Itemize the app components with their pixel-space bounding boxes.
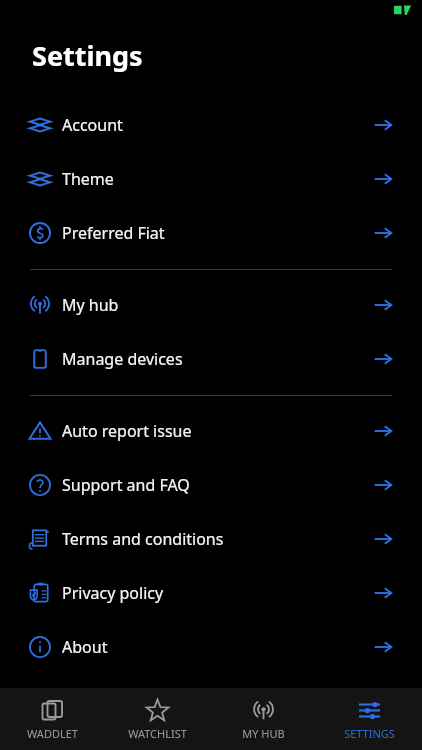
staticText: MY HUB [242, 726, 285, 741]
staticText: Privacy policy [62, 582, 164, 604]
button[interactable]: Support and FAQ [0, 458, 422, 512]
staticText: WATCHLIST [128, 726, 187, 741]
staticText: Preferred Fiat [62, 222, 165, 244]
button[interactable]: Auto report issue [0, 404, 422, 458]
staticText: Auto report issue [62, 420, 192, 442]
staticText: Manage devices [62, 348, 183, 370]
staticText: Support and FAQ [62, 474, 190, 496]
button[interactable]: Preferred Fiat [0, 206, 422, 260]
staticText: WADDLET [27, 726, 78, 741]
staticText: About [62, 636, 108, 658]
staticText: Theme [62, 168, 114, 190]
button[interactable]: Manage devices [0, 332, 422, 386]
staticText: My hub [62, 294, 119, 316]
staticText: SETTINGS [344, 726, 395, 741]
button[interactable]: MY HUB [210, 692, 316, 747]
button[interactable]: Account [0, 98, 422, 152]
button[interactable]: Terms and conditions [0, 512, 422, 566]
button[interactable]: My hub [0, 278, 422, 332]
button[interactable]: Theme [0, 152, 422, 206]
staticText: Settings [32, 37, 143, 74]
button[interactable]: WADDLET [0, 692, 105, 747]
staticText: Account [62, 114, 123, 136]
button[interactable]: Privacy policy [0, 566, 422, 620]
staticText: Terms and conditions [62, 528, 224, 550]
button[interactable]: SETTINGS [316, 692, 422, 747]
button[interactable]: WATCHLIST [105, 692, 210, 747]
button[interactable]: About [0, 620, 422, 674]
